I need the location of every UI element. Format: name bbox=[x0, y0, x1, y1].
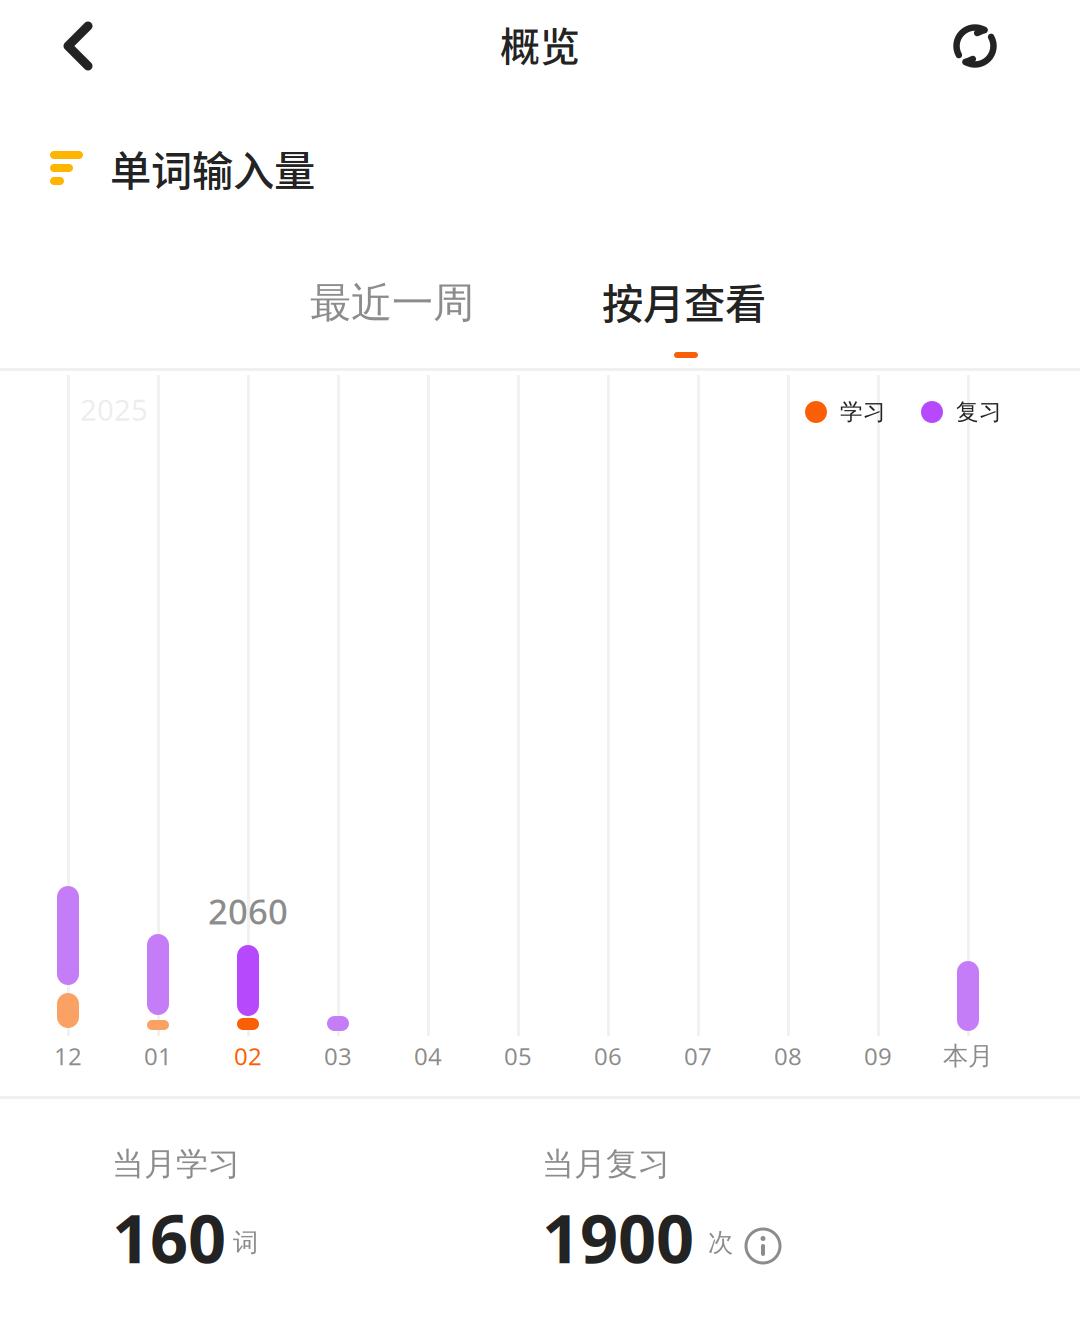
staticText: 03 bbox=[324, 1040, 352, 1072]
staticText: 12 bbox=[54, 1040, 82, 1072]
staticText: 2060 bbox=[208, 888, 288, 934]
button[interactable]: 按月查看 bbox=[564, 266, 804, 366]
staticText: 当月学习 bbox=[112, 1144, 240, 1184]
staticText: 07 bbox=[684, 1040, 712, 1072]
staticText: 按月查看 bbox=[602, 271, 766, 331]
staticText: 01 bbox=[144, 1040, 172, 1072]
staticText: 词 bbox=[233, 1227, 258, 1258]
staticText: 06 bbox=[594, 1040, 622, 1072]
staticText: 最近一周 bbox=[310, 278, 474, 328]
staticText: 当月复习 bbox=[542, 1144, 670, 1184]
staticText: 次 bbox=[708, 1227, 733, 1258]
staticText: 单词输入量 bbox=[110, 138, 315, 198]
staticText: 本月 bbox=[943, 1040, 993, 1071]
staticText: 概览 bbox=[500, 15, 580, 73]
button[interactable]: 最近一周 bbox=[272, 268, 512, 338]
staticText: 2025 bbox=[80, 390, 148, 429]
staticText: 02 bbox=[234, 1040, 262, 1072]
button[interactable]: What counts as a review bbox=[743, 1226, 783, 1266]
staticText: 08 bbox=[774, 1040, 802, 1072]
staticText: 09 bbox=[864, 1040, 892, 1072]
button[interactable]: Refresh bbox=[927, 0, 1023, 94]
staticText: 05 bbox=[504, 1040, 532, 1072]
staticText: 学习 bbox=[840, 398, 886, 426]
staticText: 1900 bbox=[542, 1193, 694, 1281]
button[interactable]: Back bbox=[30, 0, 126, 94]
staticText: 复习 bbox=[956, 398, 1002, 426]
staticText: 04 bbox=[414, 1040, 442, 1072]
staticText: 160 bbox=[112, 1193, 226, 1281]
